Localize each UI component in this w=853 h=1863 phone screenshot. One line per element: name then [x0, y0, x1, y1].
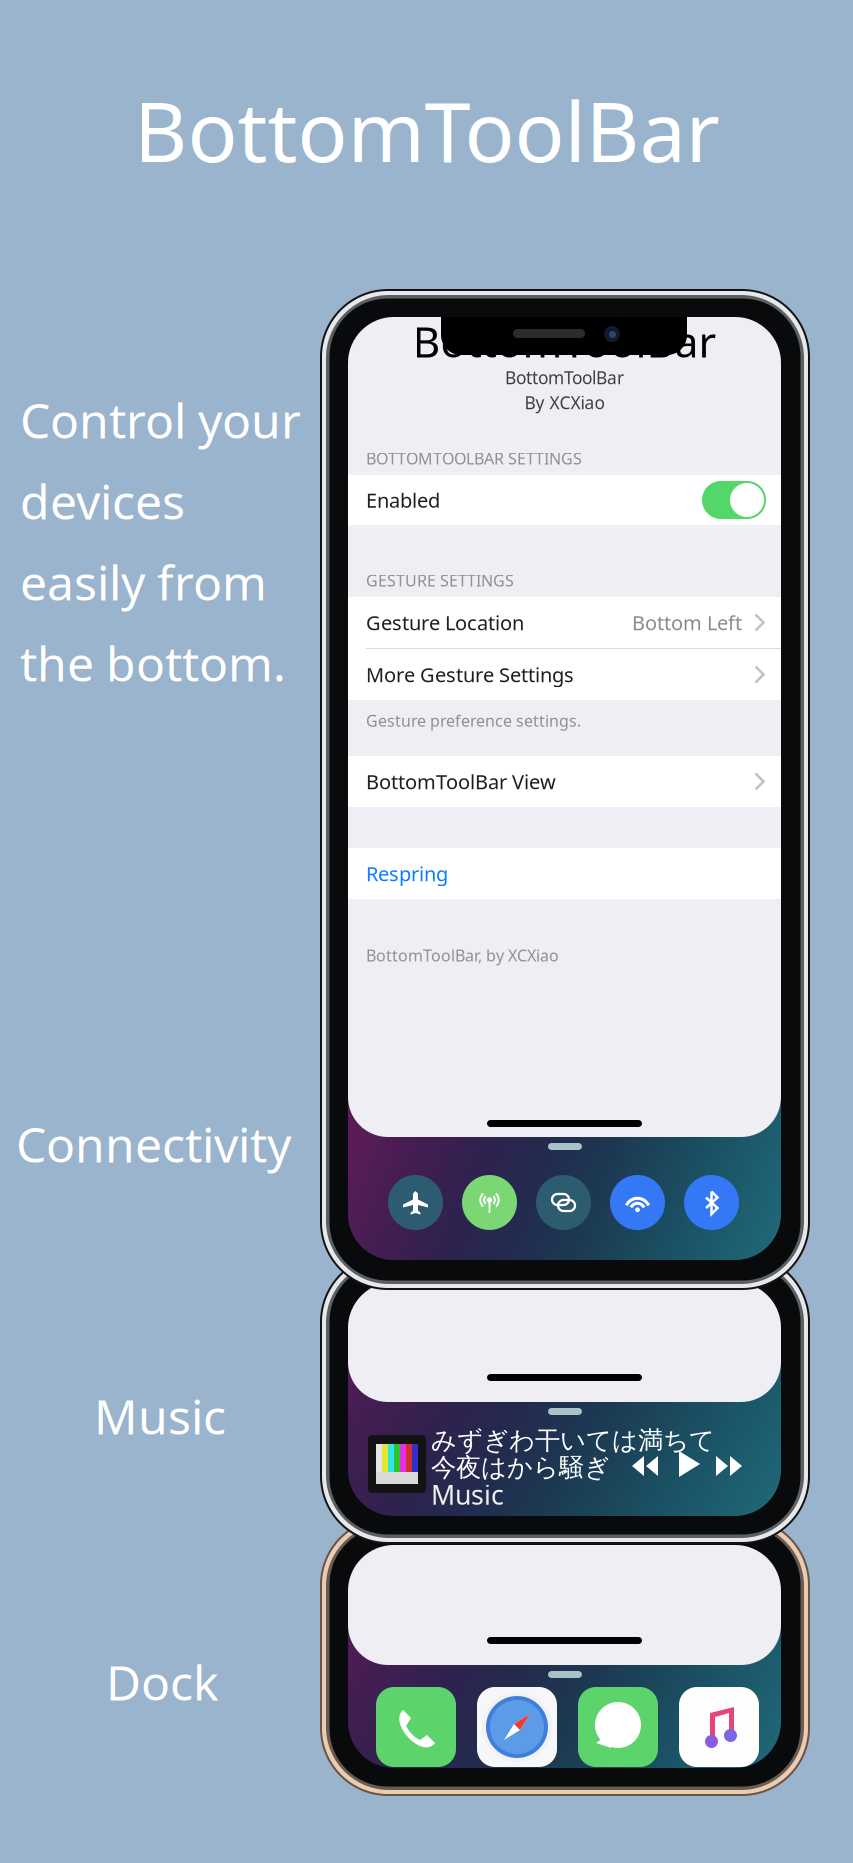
- button[interactable]: Gesture Location: [348, 597, 781, 648]
- staticText: BOTTOMTOOLBAR SETTINGS: [366, 448, 582, 469]
- staticText: みずぎわ干いては満ちて: [431, 1425, 715, 1456]
- button[interactable]: Play: [676, 1450, 703, 1478]
- staticText: the bottom.: [20, 631, 286, 695]
- staticText: BottomToolBar: [133, 75, 719, 185]
- staticText: Control your: [20, 388, 301, 452]
- staticText: Gesture Location: [366, 609, 524, 636]
- button[interactable]: Music: [679, 1687, 759, 1767]
- button[interactable]: Messages: [578, 1687, 658, 1767]
- staticText: Connectivity: [16, 1112, 291, 1176]
- button[interactable]: Enabled: [702, 481, 766, 519]
- staticText: Respring: [366, 860, 448, 887]
- button[interactable]: Airplane Mode: [388, 1175, 443, 1230]
- button[interactable]: Wi-Fi: [610, 1175, 665, 1230]
- button[interactable]: Previous: [631, 1452, 659, 1480]
- staticText: GESTURE SETTINGS: [366, 570, 514, 591]
- staticText: Bottom Left: [632, 609, 742, 636]
- button[interactable]: AirDrop: [536, 1175, 591, 1230]
- staticText: Music: [94, 1384, 226, 1448]
- staticText: Dock: [106, 1650, 219, 1714]
- button[interactable]: Next: [715, 1452, 743, 1480]
- button[interactable]: More Gesture Settings: [348, 649, 781, 700]
- staticText: BottomToolBar: [505, 366, 624, 389]
- button[interactable]: Cellular Data: [462, 1175, 517, 1230]
- staticText: BottomToolBar View: [366, 768, 556, 795]
- button[interactable]: Enabled: [348, 475, 781, 525]
- staticText: More Gesture Settings: [366, 661, 574, 688]
- staticText: BottomToolBar: [412, 313, 716, 369]
- button[interactable]: BottomToolBar View: [348, 756, 781, 807]
- staticText: BottomToolBar, by XCXiao: [366, 945, 559, 966]
- button[interactable]: Bluetooth: [684, 1175, 739, 1230]
- staticText: Music: [431, 1477, 504, 1512]
- button[interactable]: Phone: [376, 1687, 456, 1767]
- button[interactable]: Respring: [348, 848, 781, 899]
- staticText: easily from: [20, 550, 267, 614]
- staticText: 今夜はから騒ぎ: [431, 1452, 610, 1483]
- staticText: Gesture preference settings.: [366, 710, 581, 731]
- staticText: devices: [20, 469, 185, 533]
- button[interactable]: Safari: [477, 1687, 557, 1767]
- staticText: Enabled: [366, 487, 440, 513]
- staticText: By XCXiao: [524, 391, 604, 414]
